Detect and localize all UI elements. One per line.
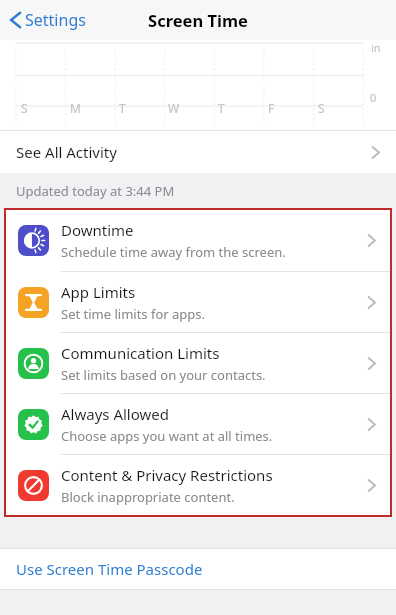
staticText: Block inappropriate content. <box>61 488 235 506</box>
staticText: F <box>268 100 275 116</box>
staticText: Updated today at 3:44 PM <box>16 182 175 200</box>
staticText: Schedule time away from the screen. <box>61 243 286 261</box>
staticText: Set time limits for apps. <box>61 305 206 323</box>
staticText: Always Allowed <box>61 404 169 424</box>
staticText: 0 <box>370 90 377 105</box>
staticText: T <box>218 100 225 116</box>
button[interactable]: App Limits <box>6 271 390 332</box>
button[interactable]: Settings <box>0 3 96 37</box>
staticText: Screen Time <box>148 9 248 31</box>
staticText: S <box>318 100 325 116</box>
staticText: Set limits based on your contacts. <box>61 366 266 384</box>
button[interactable]: Content & Privacy Restrictions <box>6 454 390 515</box>
button[interactable]: Use Screen Time Passcode <box>0 549 396 589</box>
staticText: Downtime <box>61 220 134 240</box>
staticText: App Limits <box>61 282 136 302</box>
staticText: Settings <box>25 9 86 31</box>
staticText: Choose apps you want at all times. <box>61 427 273 445</box>
button[interactable]: See All Activity <box>0 131 396 173</box>
staticText: T <box>119 100 126 116</box>
staticText: W <box>168 100 180 116</box>
staticText: Use Screen Time Passcode <box>16 559 203 579</box>
staticText: S <box>21 100 28 116</box>
button[interactable]: Communication Limits <box>6 332 390 393</box>
staticText: in <box>371 40 381 55</box>
staticText: See All Activity <box>16 142 371 162</box>
staticText: M <box>70 100 81 116</box>
button[interactable]: Downtime <box>6 210 390 271</box>
button[interactable]: Always Allowed <box>6 393 390 454</box>
staticText: Communication Limits <box>61 343 220 363</box>
staticText: Content & Privacy Restrictions <box>61 465 273 485</box>
